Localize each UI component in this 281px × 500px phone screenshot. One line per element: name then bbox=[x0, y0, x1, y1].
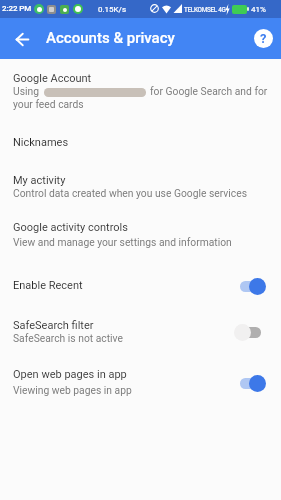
button[interactable]: Google activity controls bbox=[0, 215, 281, 251]
staticText: SafeSearch is not active bbox=[13, 332, 123, 344]
button[interactable] bbox=[238, 374, 266, 392]
button[interactable]: SafeSearch filter bbox=[0, 315, 281, 349]
staticText: Google Account bbox=[13, 72, 92, 85]
staticText: your feed cards bbox=[13, 98, 84, 110]
staticText: TELKOMSEL 4G bbox=[184, 6, 226, 14]
staticText: View and manage your settings and inform… bbox=[13, 236, 232, 248]
staticText: SafeSearch filter bbox=[13, 319, 94, 332]
button[interactable] bbox=[238, 277, 266, 295]
staticText: 2:22 PM bbox=[2, 4, 32, 13]
button[interactable]: Google Account bbox=[0, 66, 281, 114]
staticText: Control data created when you use Google… bbox=[13, 187, 247, 199]
staticText: 41% bbox=[251, 5, 266, 14]
staticText: Open web pages in app bbox=[13, 368, 127, 381]
staticText: Using bbox=[13, 85, 39, 97]
button[interactable]: Nicknames bbox=[0, 128, 281, 156]
staticText: Accounts & privacy bbox=[46, 29, 175, 47]
button[interactable] bbox=[234, 323, 262, 341]
button[interactable] bbox=[8, 25, 36, 53]
staticText: ? bbox=[260, 31, 267, 46]
button[interactable]: Open web pages in app bbox=[0, 364, 281, 400]
staticText: Nicknames bbox=[13, 136, 69, 149]
staticText: Viewing web pages in app bbox=[13, 384, 132, 396]
button[interactable]: My activity bbox=[0, 168, 281, 204]
staticText: 0.15K/s bbox=[98, 5, 127, 14]
button[interactable]: ? bbox=[254, 29, 273, 48]
staticText: Google activity controls bbox=[13, 221, 128, 234]
button[interactable]: Enable Recent bbox=[0, 272, 281, 300]
staticText: Enable Recent bbox=[13, 279, 83, 292]
staticText: My activity bbox=[13, 174, 66, 187]
staticText: for Google Search and for bbox=[150, 85, 268, 97]
